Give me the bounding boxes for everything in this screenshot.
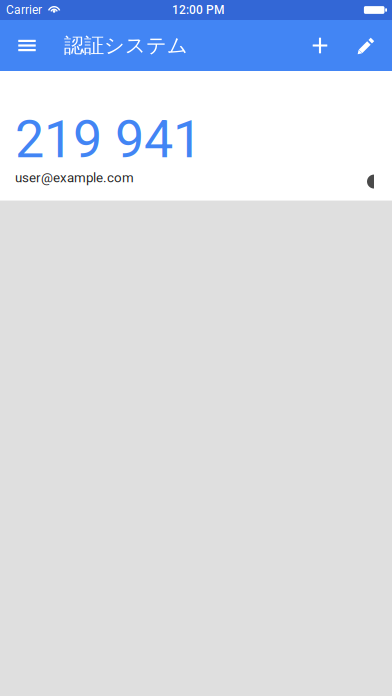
button[interactable]: Menu	[9, 20, 45, 71]
button[interactable]: Add account	[300, 20, 344, 71]
button[interactable]: Edit accounts	[344, 20, 388, 71]
staticText: user@example.com	[15, 170, 134, 185]
staticText: Carrier	[6, 3, 42, 17]
staticText: 認証システム	[64, 33, 188, 58]
staticText: 219 941	[15, 109, 202, 170]
button[interactable]: 認証システム	[45, 20, 188, 71]
staticText: 12:00 PM	[172, 3, 224, 17]
button[interactable]: 219 941	[0, 71, 392, 201]
